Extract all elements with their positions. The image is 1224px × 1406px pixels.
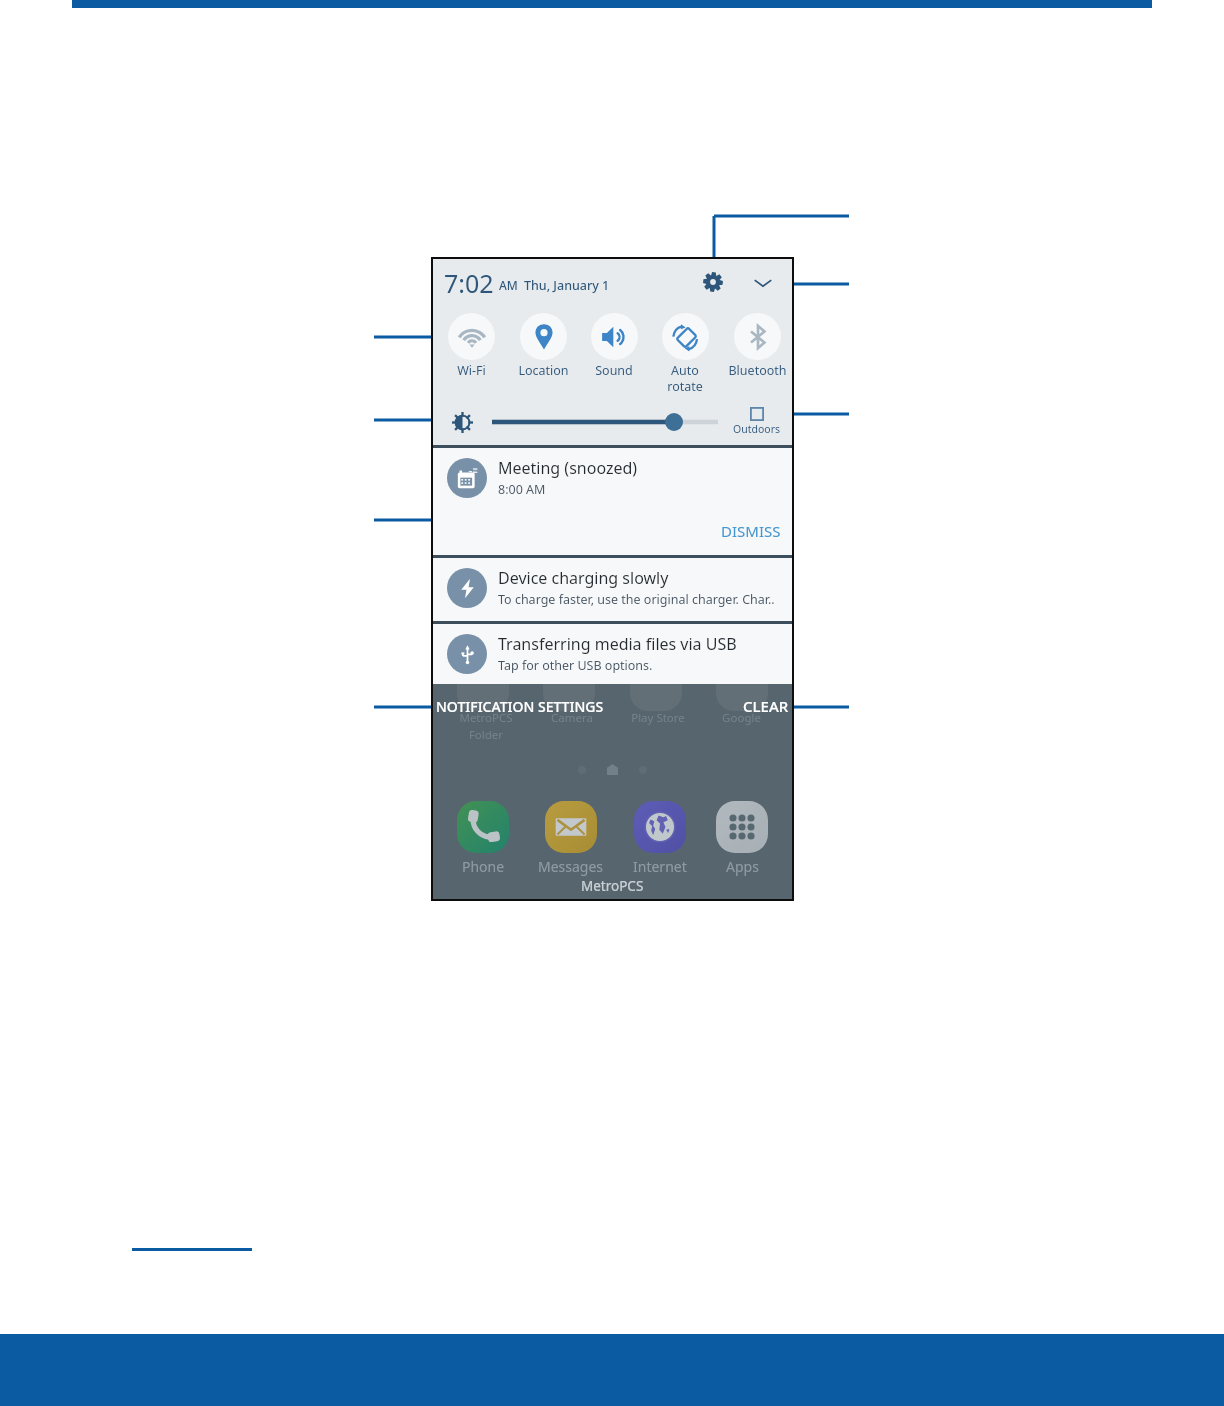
button[interactable]: DISMISS: [721, 521, 781, 541]
button[interactable]: Auto rotate: [645, 313, 725, 394]
staticText: Auto rotate: [667, 362, 703, 394]
staticText: 7:02: [444, 266, 494, 296]
staticText: Meeting (snoozed): [498, 457, 638, 479]
staticText: CLEAR: [743, 696, 789, 716]
staticText: Outdoors: [733, 422, 781, 436]
staticText: Bluetooth: [728, 362, 787, 379]
staticText: Phone: [462, 857, 505, 876]
staticText: Location: [518, 362, 569, 379]
staticText: Device charging slowly: [498, 567, 669, 589]
staticText: AM: [499, 277, 518, 293]
staticText: Wi-Fi: [457, 362, 486, 379]
button[interactable]: Sound: [574, 313, 654, 379]
staticText: MetroPCS Folder: [443, 710, 529, 742]
button[interactable]: Phone: [457, 801, 509, 876]
button[interactable]: Outdoors: [727, 407, 787, 436]
button[interactable]: Location: [503, 313, 583, 379]
staticText: DISMISS: [721, 521, 781, 541]
button[interactable]: CLEAR: [743, 696, 789, 716]
button[interactable]: Meeting (snoozed): [433, 448, 792, 555]
staticText: To charge faster, use the original charg…: [498, 591, 775, 608]
button[interactable]: Device charging slowly: [433, 558, 792, 621]
button[interactable]: Wi-Fi: [431, 313, 511, 379]
staticText: Thu, January 1: [524, 277, 610, 294]
button[interactable]: Transferring media files via USB: [433, 624, 792, 684]
button[interactable]: MetroPCS Folder: [457, 659, 509, 711]
button[interactable]: Google: [716, 659, 768, 711]
button[interactable]: Bluetooth: [717, 313, 797, 379]
button[interactable]: Auto brightness: [452, 412, 473, 433]
staticText: Tap for other USB options.: [498, 657, 653, 674]
staticText: Google: [701, 710, 782, 726]
button[interactable]: Messages: [538, 801, 604, 876]
button[interactable]: Apps: [716, 801, 768, 876]
staticText: Play Store: [615, 710, 701, 726]
staticText: Internet: [633, 857, 687, 876]
staticText: Camera: [529, 710, 615, 726]
staticText: Transferring media files via USB: [498, 633, 737, 655]
staticText: MetroPCS: [581, 877, 644, 895]
button[interactable]: Brightness slider: [490, 413, 720, 431]
staticText: Messages: [538, 857, 604, 876]
button[interactable]: Play Store: [630, 659, 682, 711]
staticText: Apps: [726, 857, 759, 876]
button[interactable]: NOTIFICATION SETTINGS: [436, 697, 604, 716]
button[interactable]: Collapse panel: [747, 267, 778, 298]
staticText: Sound: [595, 362, 633, 379]
button[interactable]: Settings: [697, 266, 728, 297]
button[interactable]: Camera: [543, 659, 595, 711]
button[interactable]: Internet: [633, 801, 687, 876]
staticText: 8:00 AM: [498, 481, 546, 498]
staticText: NOTIFICATION SETTINGS: [436, 697, 604, 716]
